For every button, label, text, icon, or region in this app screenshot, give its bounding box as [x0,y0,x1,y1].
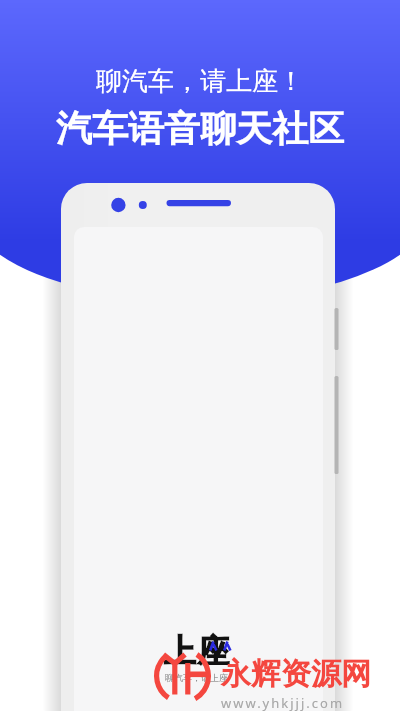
staticText: 上座 [163,631,230,671]
staticText: 汽车语音聊天社区 [56,106,344,151]
staticText: www.yhkjjj.com [221,694,345,711]
staticText: 聊汽车，请上座！ [96,65,304,98]
staticText: 永辉资源网 [221,655,371,693]
staticText: 聊汽车，请上座 [165,672,228,683]
